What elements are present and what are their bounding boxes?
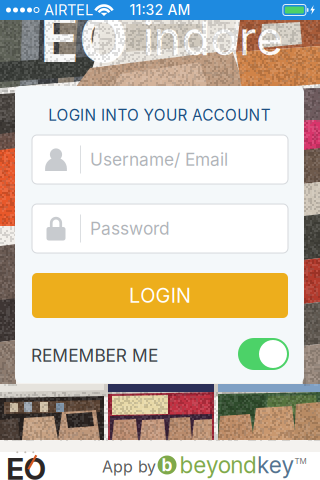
staticText: REMEMBER ME bbox=[31, 345, 158, 366]
button[interactable]: Beyond Key bbox=[162, 454, 302, 476]
staticText: indore bbox=[143, 10, 283, 66]
button[interactable]: Remember me bbox=[238, 338, 289, 370]
staticText: b bbox=[161, 454, 172, 475]
staticText: 11:32 AM bbox=[129, 1, 190, 18]
staticText: Password bbox=[90, 218, 170, 239]
staticText: Username/ Email bbox=[90, 149, 228, 170]
staticText: LOGIN bbox=[129, 283, 191, 308]
staticText: TM bbox=[294, 456, 306, 466]
staticText: beyond bbox=[179, 451, 257, 479]
button[interactable]: EO Indore bbox=[8, 452, 44, 480]
staticText: AIRTEL bbox=[44, 1, 93, 19]
staticText: EO bbox=[40, 0, 128, 77]
button[interactable]: LOGIN bbox=[32, 273, 288, 318]
staticText: App by bbox=[102, 457, 156, 476]
staticText: LOGIN INTO YOUR ACCOUNT bbox=[48, 106, 271, 125]
staticText: key bbox=[257, 451, 294, 479]
staticText: EO bbox=[6, 451, 46, 480]
